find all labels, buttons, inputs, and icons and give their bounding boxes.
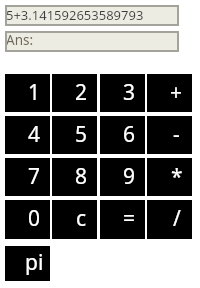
button[interactable]: 6: [100, 116, 145, 154]
button[interactable]: c: [52, 200, 97, 239]
staticText: c: [76, 204, 87, 233]
staticText: =: [123, 204, 136, 233]
button[interactable]: 5+3.141592653589793: [5, 5, 179, 26]
button[interactable]: 9: [100, 158, 145, 196]
staticText: /: [173, 204, 181, 233]
button[interactable]: *: [147, 158, 192, 196]
button[interactable]: Ans:: [5, 31, 179, 52]
button[interactable]: -: [147, 116, 192, 154]
staticText: +: [170, 78, 183, 107]
staticText: 5: [75, 120, 88, 149]
staticText: pi: [25, 248, 44, 277]
button[interactable]: 7: [5, 158, 50, 196]
button[interactable]: +: [147, 74, 192, 112]
button[interactable]: =: [100, 200, 145, 239]
button[interactable]: 8: [52, 158, 97, 196]
button[interactable]: 2: [52, 74, 97, 112]
button[interactable]: /: [147, 200, 192, 239]
staticText: 2: [75, 78, 88, 107]
staticText: 7: [28, 162, 41, 191]
staticText: 0: [28, 204, 41, 233]
staticText: 3: [123, 78, 136, 107]
staticText: -: [173, 120, 180, 149]
button[interactable]: 0: [5, 200, 50, 239]
staticText: 6: [123, 120, 136, 149]
staticText: 1: [28, 78, 41, 107]
button[interactable]: 4: [5, 116, 50, 154]
staticText: *: [171, 162, 183, 191]
button[interactable]: 3: [100, 74, 145, 112]
staticText: 9: [123, 162, 136, 191]
staticText: Ans:: [6, 31, 34, 49]
button[interactable]: pi: [5, 246, 50, 281]
button[interactable]: 5: [52, 116, 97, 154]
button[interactable]: 1: [5, 74, 50, 112]
staticText: 8: [75, 162, 88, 191]
staticText: 4: [28, 120, 41, 149]
staticText: 5+3.141592653589793: [6, 6, 144, 24]
